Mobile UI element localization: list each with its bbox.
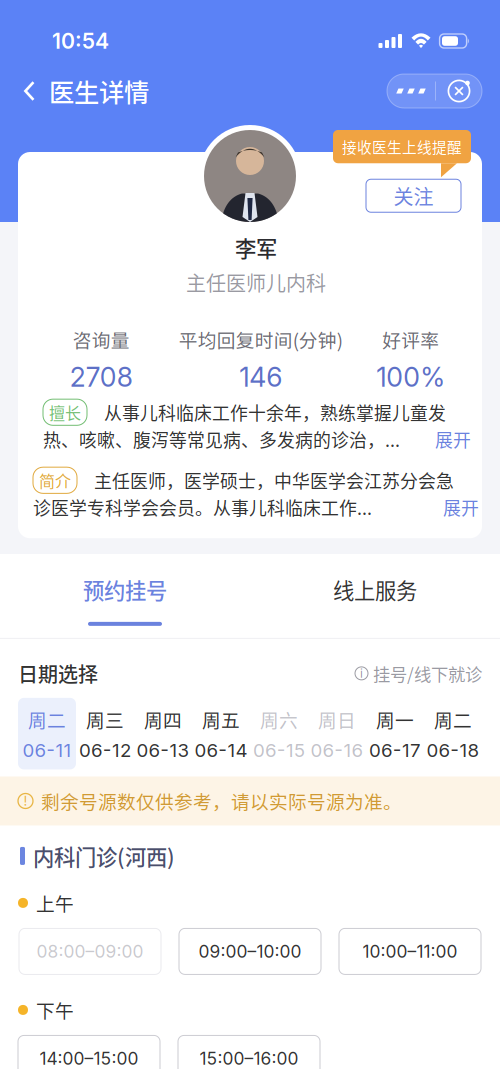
button[interactable]: 周三 <box>76 698 134 769</box>
staticText: 周三 <box>86 706 124 733</box>
staticText: 周二 <box>434 706 472 733</box>
staticText: 剩余号源数仅供参考，请以实际号源为准。 <box>41 787 402 814</box>
staticText: 热、咳嗽、腹泻等常见病、多发病的诊治，... <box>43 426 400 452</box>
button[interactable]: 15:00–16:00 <box>178 1035 320 1069</box>
staticText: 08:00–09:00 <box>36 941 143 962</box>
staticText: 预约挂号 <box>83 574 167 605</box>
staticText: 医生详情 <box>49 73 149 109</box>
staticText: 2708 <box>70 361 133 393</box>
staticText: 06-16 <box>310 739 363 761</box>
button[interactable]: 关注 <box>366 179 461 212</box>
button[interactable]: 周五 <box>192 698 250 769</box>
staticText: 周二 <box>28 706 66 733</box>
staticText: 10:54 <box>52 28 109 54</box>
button[interactable]: 周六 <box>250 698 308 769</box>
staticText: 06-15 <box>253 739 305 761</box>
button[interactable]: 08:00–09:00 <box>19 928 161 974</box>
button[interactable]: 预约挂号 <box>0 554 250 638</box>
button[interactable]: i <box>355 661 482 686</box>
staticText: 展开 <box>435 426 471 452</box>
staticText: 接收医生上线提醒 <box>342 136 462 157</box>
button[interactable]: Back <box>12 70 46 111</box>
staticText: ! <box>23 793 27 809</box>
staticText: 100% <box>376 361 445 393</box>
staticText: 06-12 <box>79 739 131 761</box>
staticText: 06-14 <box>194 739 247 761</box>
button[interactable]: 14:00–15:00 <box>18 1035 160 1069</box>
staticText: 周一 <box>376 706 414 733</box>
button[interactable]: 周二 <box>18 698 76 769</box>
staticText: 李军 <box>235 232 277 263</box>
staticText: 146 <box>239 361 282 393</box>
staticText: 14:00–15:00 <box>39 1048 138 1069</box>
staticText: 平均回复时间(分钟) <box>179 326 343 353</box>
button[interactable]: 09:00–10:00 <box>179 928 321 974</box>
staticText: 挂号/线下就诊 <box>373 661 482 686</box>
staticText: 10:00–11:00 <box>362 941 457 962</box>
staticText: 诊医学专科学会会员。从事儿科临床工作... <box>33 494 372 520</box>
staticText: 内科门诊(河西) <box>33 840 175 871</box>
staticText: 简介 <box>39 469 71 492</box>
button[interactable]: More <box>387 74 435 108</box>
staticText: 从事儿科临床工作十余年，熟练掌握儿童发 <box>104 399 446 425</box>
staticText: 日期选择 <box>18 659 98 688</box>
button[interactable]: Close <box>436 74 482 108</box>
staticText: 展开 <box>443 494 479 520</box>
button[interactable]: 展开 <box>435 426 471 452</box>
button[interactable]: 周二 <box>424 698 482 769</box>
button[interactable]: 周日 <box>308 698 366 769</box>
staticText: 09:00–10:00 <box>198 941 301 962</box>
staticText: 主任医师 <box>186 268 266 297</box>
staticText: 周五 <box>202 706 240 733</box>
staticText: i <box>360 666 363 681</box>
staticText: 周六 <box>260 706 298 733</box>
staticText: 主任医师，医学硕士，中华医学会江苏分会急 <box>94 467 454 493</box>
staticText: 15:00–16:00 <box>199 1048 298 1069</box>
staticText: 咨询量 <box>73 326 130 353</box>
staticText: 好评率 <box>382 326 439 353</box>
button[interactable]: 展开 <box>443 494 479 520</box>
button[interactable]: 周四 <box>134 698 192 769</box>
staticText: 周四 <box>144 706 182 733</box>
staticText: 儿内科 <box>266 268 326 297</box>
staticText: 06-17 <box>369 739 421 761</box>
staticText: 周日 <box>318 706 356 733</box>
staticText: 06-11 <box>22 739 71 761</box>
button[interactable]: 周一 <box>366 698 424 769</box>
staticText: 下午 <box>36 996 74 1023</box>
staticText: 关注 <box>393 181 433 210</box>
staticText: 上午 <box>36 889 74 916</box>
staticText: 06-18 <box>426 739 479 761</box>
staticText: 线上服务 <box>333 574 417 605</box>
button[interactable]: 线上服务 <box>250 554 500 638</box>
staticText: 06-13 <box>136 739 189 761</box>
button[interactable]: 10:00–11:00 <box>339 928 481 974</box>
staticText: 擅长 <box>49 401 81 424</box>
